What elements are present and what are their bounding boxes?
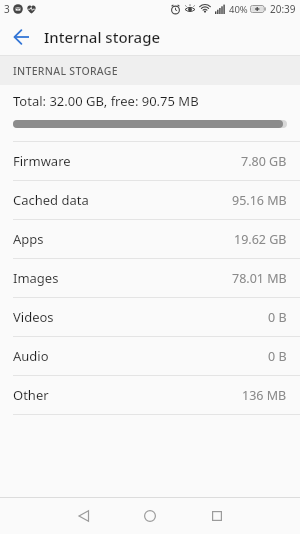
staticText: Images: [13, 269, 59, 287]
staticText: Other: [13, 386, 49, 404]
staticText: Apps: [13, 230, 44, 248]
button[interactable]: [189, 498, 244, 534]
button[interactable]: [56, 498, 111, 534]
staticText: Audio: [13, 347, 49, 365]
staticText: 20:39: [270, 2, 296, 16]
staticText: 3: [4, 2, 10, 16]
staticText: Videos: [13, 308, 54, 326]
staticText: Total: 32.00 GB, free: 90.75 MB: [13, 92, 199, 110]
button[interactable]: Cached data: [0, 181, 300, 219]
button[interactable]: [122, 498, 177, 534]
staticText: 19.62 GB: [234, 231, 287, 248]
staticText: 40%: [229, 3, 248, 16]
button[interactable]: Videos: [0, 298, 300, 336]
staticText: Firmware: [13, 152, 71, 170]
staticText: 7.80 GB: [241, 153, 287, 170]
button[interactable]: Apps: [0, 220, 300, 258]
button[interactable]: [0, 18, 44, 55]
staticText: Internal storage: [44, 27, 161, 47]
staticText: INTERNAL STORAGE: [13, 64, 118, 78]
staticText: 0 B: [268, 348, 287, 365]
staticText: Cached data: [13, 191, 89, 209]
staticText: 95.16 MB: [232, 192, 287, 209]
button[interactable]: Images: [0, 259, 300, 297]
button[interactable]: Firmware: [0, 142, 300, 180]
staticText: 78.01 MB: [232, 270, 287, 287]
staticText: 0 B: [268, 309, 287, 326]
button[interactable]: Other: [0, 376, 300, 414]
button[interactable]: Audio: [0, 337, 300, 375]
staticText: 136 MB: [242, 387, 287, 404]
